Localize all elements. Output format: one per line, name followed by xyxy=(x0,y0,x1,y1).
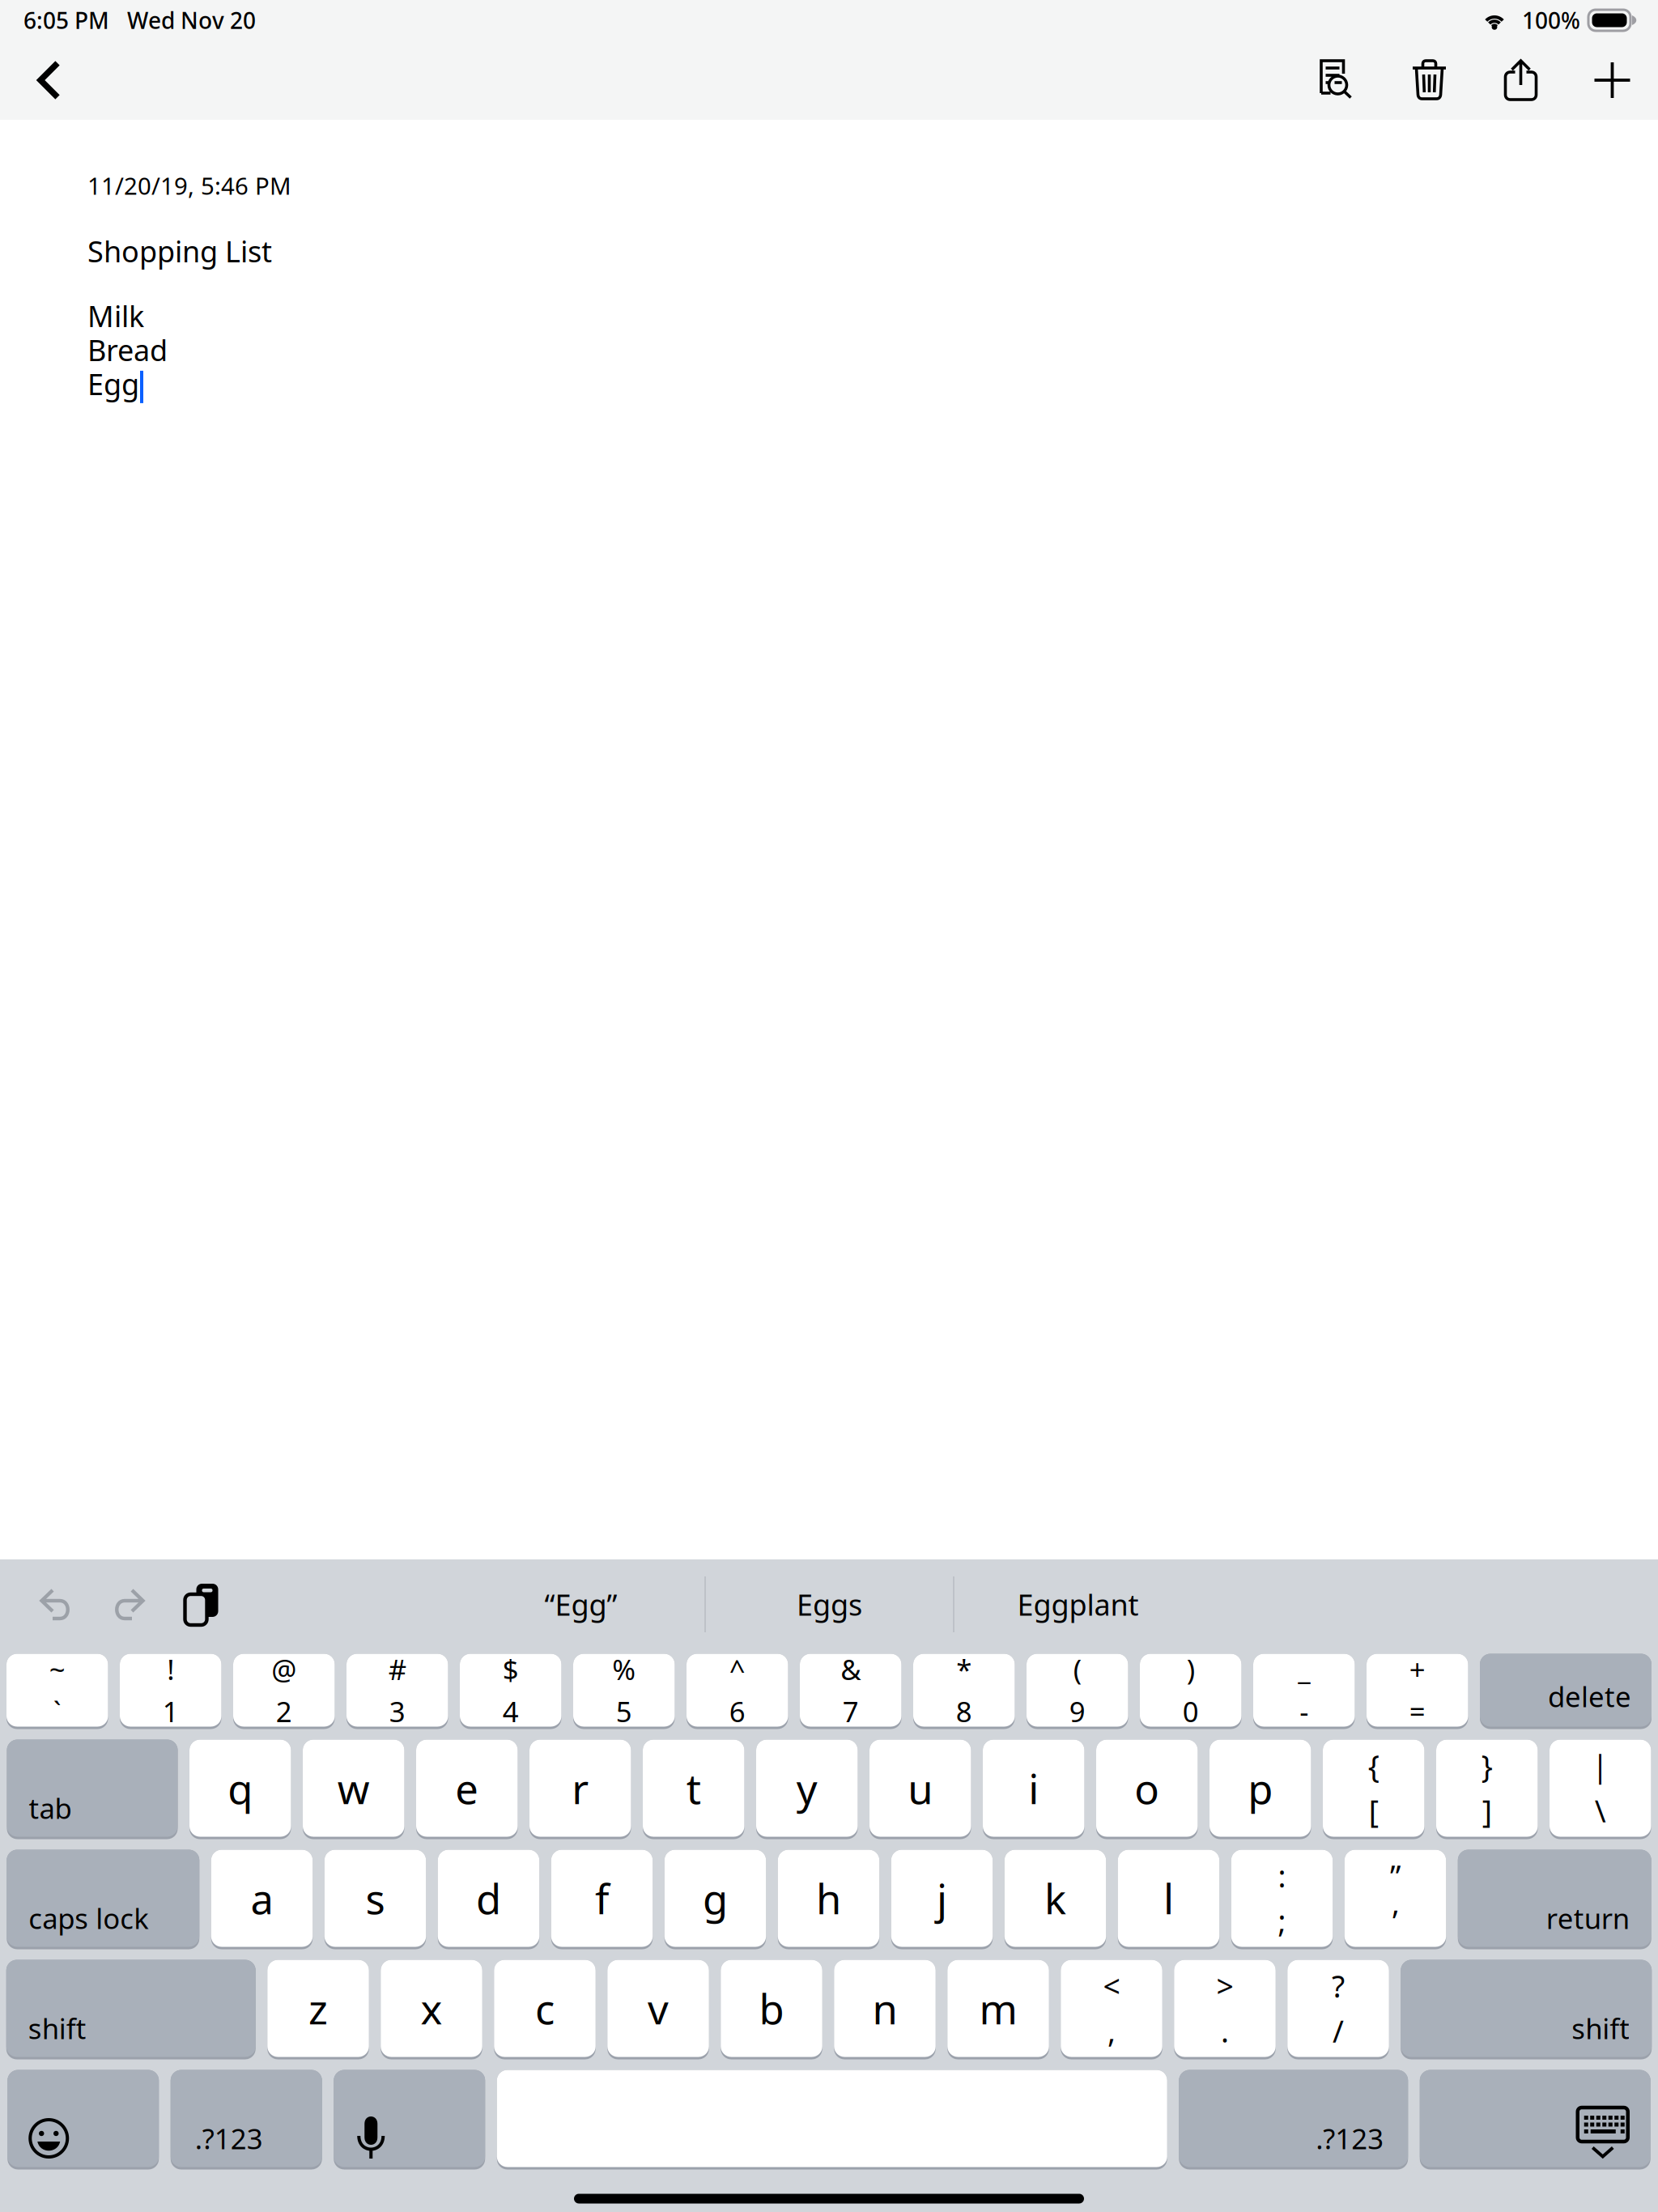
staticText: h xyxy=(816,1871,841,1926)
button[interactable]: | xyxy=(1550,1740,1651,1839)
staticText: ^ xyxy=(729,1650,745,1688)
button[interactable]: o xyxy=(1096,1740,1198,1839)
button[interactable]: * xyxy=(913,1654,1015,1729)
staticText: 11/20/19, 5:46 PM xyxy=(87,170,291,201)
button[interactable]: ? xyxy=(1287,1960,1389,2059)
button[interactable] xyxy=(1420,2070,1651,2169)
staticText: \ xyxy=(1595,1791,1606,1831)
staticText: g xyxy=(703,1871,728,1926)
button[interactable] xyxy=(497,2070,1167,2169)
staticText: c xyxy=(535,1981,555,2036)
button[interactable]: @ xyxy=(233,1654,335,1729)
button[interactable]: ! xyxy=(120,1654,221,1729)
button[interactable]: g xyxy=(664,1850,766,1949)
button[interactable]: : xyxy=(1231,1850,1333,1949)
staticText: | xyxy=(1592,1746,1609,1786)
button[interactable]: .?123 xyxy=(171,2070,322,2169)
button[interactable]: h xyxy=(778,1850,879,1949)
button[interactable]: _ xyxy=(1253,1654,1355,1729)
button[interactable]: ~ xyxy=(6,1654,108,1729)
button[interactable]: i xyxy=(983,1740,1084,1839)
button[interactable]: ^ xyxy=(687,1654,788,1729)
staticText: ( xyxy=(1073,1650,1081,1688)
button[interactable]: n xyxy=(834,1960,936,2059)
button[interactable] xyxy=(334,2070,485,2169)
staticText: 2 xyxy=(276,1693,292,1730)
staticText: delete xyxy=(1548,1678,1631,1715)
staticText: 1 xyxy=(163,1693,179,1730)
button[interactable]: $ xyxy=(460,1654,561,1729)
staticText: ` xyxy=(53,1693,61,1730)
button[interactable]: c xyxy=(494,1960,596,2059)
button[interactable]: Eggplant xyxy=(954,1555,1201,1654)
staticText: { xyxy=(1368,1746,1379,1786)
staticText: $ xyxy=(503,1650,519,1688)
button[interactable]: .?123 xyxy=(1179,2070,1408,2169)
button[interactable]: j xyxy=(891,1850,993,1949)
button[interactable]: q xyxy=(189,1740,291,1839)
staticText: @ xyxy=(271,1650,296,1688)
button[interactable]: } xyxy=(1436,1740,1538,1839)
button[interactable]: shift xyxy=(6,1960,256,2059)
button[interactable]: ” xyxy=(1345,1850,1446,1949)
button[interactable]: delete xyxy=(1480,1654,1652,1729)
button[interactable]: l xyxy=(1118,1850,1219,1949)
button[interactable]: d xyxy=(438,1850,539,1949)
button[interactable]: ( xyxy=(1027,1654,1128,1729)
button[interactable]: t xyxy=(643,1740,744,1839)
staticText: d xyxy=(476,1871,501,1926)
button[interactable]: ) xyxy=(1140,1654,1241,1729)
button[interactable]: Paste xyxy=(165,1555,238,1654)
button[interactable]: Back xyxy=(14,40,87,120)
button[interactable]: Undo xyxy=(19,1555,92,1654)
staticText: ! xyxy=(167,1650,174,1688)
button[interactable]: e xyxy=(416,1740,518,1839)
button[interactable]: tab xyxy=(7,1740,178,1839)
button[interactable]: % xyxy=(573,1654,675,1729)
staticText: + xyxy=(1409,1650,1425,1688)
button[interactable]: x xyxy=(381,1960,482,2059)
button[interactable] xyxy=(7,2070,159,2169)
button[interactable]: k xyxy=(1005,1850,1106,1949)
button[interactable]: m xyxy=(947,1960,1049,2059)
button[interactable]: “Egg” xyxy=(457,1555,704,1654)
button[interactable]: shift xyxy=(1401,1960,1652,2059)
staticText: [ xyxy=(1369,1791,1379,1831)
button[interactable]: s xyxy=(324,1850,426,1949)
button[interactable]: z xyxy=(267,1960,369,2059)
staticText: # xyxy=(388,1650,406,1688)
button[interactable]: Redo xyxy=(92,1555,165,1654)
button[interactable]: a xyxy=(211,1850,313,1949)
button[interactable]: p xyxy=(1209,1740,1311,1839)
staticText: shift xyxy=(28,2010,86,2047)
button[interactable]: + xyxy=(1367,1654,1468,1729)
button[interactable]: Share xyxy=(1475,40,1567,120)
staticText: ) xyxy=(1187,1650,1195,1688)
button[interactable]: b xyxy=(721,1960,822,2059)
button[interactable]: > xyxy=(1174,1960,1276,2059)
staticText: = xyxy=(1409,1693,1425,1730)
staticText: p xyxy=(1248,1761,1273,1815)
button[interactable]: u xyxy=(869,1740,971,1839)
button[interactable]: < xyxy=(1061,1960,1162,2059)
button[interactable]: Eggs xyxy=(706,1555,953,1654)
button[interactable]: y xyxy=(756,1740,858,1839)
staticText: s xyxy=(366,1871,385,1926)
button[interactable]: r xyxy=(529,1740,631,1839)
button[interactable]: caps lock xyxy=(7,1850,199,1949)
button[interactable]: New note xyxy=(1567,40,1658,120)
button[interactable]: & xyxy=(800,1654,901,1729)
button[interactable]: v xyxy=(607,1960,709,2059)
button[interactable]: Delete note xyxy=(1384,40,1475,120)
button[interactable]: w xyxy=(303,1740,404,1839)
button[interactable]: f xyxy=(551,1850,653,1949)
staticText: 9 xyxy=(1069,1693,1085,1730)
staticText: z xyxy=(308,1981,328,2036)
button[interactable]: Search in note xyxy=(1292,40,1384,120)
staticText: Eggplant xyxy=(1017,1585,1139,1624)
staticText: return xyxy=(1546,1899,1630,1937)
button[interactable]: return xyxy=(1458,1850,1651,1949)
button[interactable]: # xyxy=(346,1654,448,1729)
button[interactable]: { xyxy=(1323,1740,1424,1839)
staticText: } xyxy=(1481,1746,1493,1786)
